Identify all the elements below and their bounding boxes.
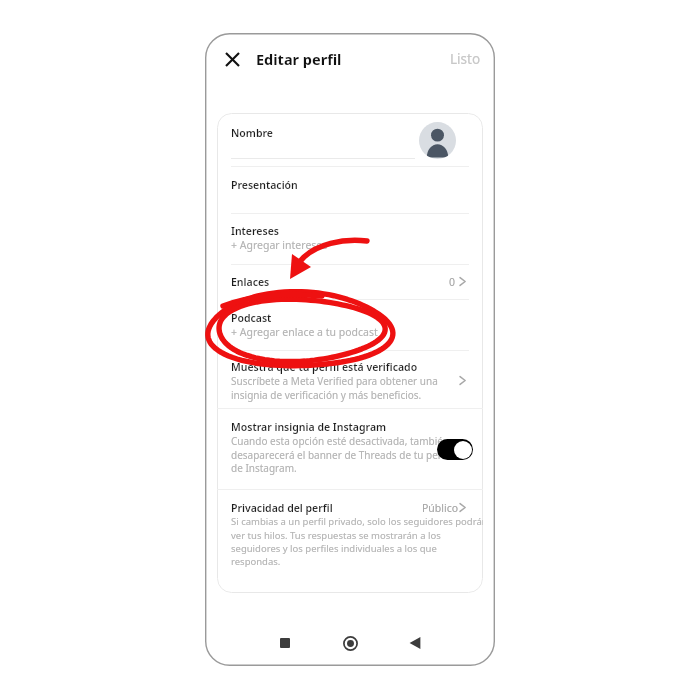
button[interactable]: Presentación [217, 167, 483, 213]
button[interactable]: Mostrar insignia de Instagram [217, 409, 483, 489]
button[interactable]: Nombre [217, 113, 483, 166]
staticText: Editar perfil [256, 49, 342, 69]
button[interactable]: Muestra que tu perfil está verificado [217, 351, 483, 408]
button[interactable]: Intereses [217, 214, 483, 264]
staticText: Presentación [231, 178, 298, 192]
button[interactable]: Podcast [217, 300, 483, 350]
staticText: + Agregar enlace a tu podcast [231, 325, 378, 339]
button[interactable]: Recientes [273, 631, 297, 655]
button[interactable]: Listo [450, 50, 481, 68]
staticText: Privacidad del perfil [231, 501, 333, 515]
staticText: Muestra que tu perfil está verificado [231, 360, 418, 374]
button[interactable]: Foto de perfil [419, 122, 456, 159]
staticText: Enlaces [231, 275, 270, 289]
staticText: Cuando esta opción esté desactivada, tam… [231, 434, 451, 475]
button[interactable]: Atrás [403, 631, 427, 655]
staticText: Público [422, 501, 459, 515]
button[interactable]: Privacidad del perfil [217, 490, 483, 580]
staticText: Nombre [231, 126, 273, 140]
staticText: + Agregar intereses [231, 238, 328, 252]
staticText: Intereses [231, 224, 279, 238]
staticText: Listo [450, 50, 481, 68]
button[interactable]: Inicio [338, 631, 362, 655]
staticText: Podcast [231, 311, 272, 325]
button[interactable]: Mostrar insignia de Instagram [437, 439, 473, 460]
staticText: 0 [449, 275, 456, 289]
button[interactable]: Cerrar [219, 46, 245, 72]
staticText: Mostrar insignia de Instagram [231, 420, 387, 434]
staticText: Suscríbete a Meta Verified para obtener … [231, 374, 438, 402]
button[interactable]: Enlaces [217, 265, 483, 299]
staticText: Si cambias a un perfil privado, solo los… [231, 515, 483, 567]
